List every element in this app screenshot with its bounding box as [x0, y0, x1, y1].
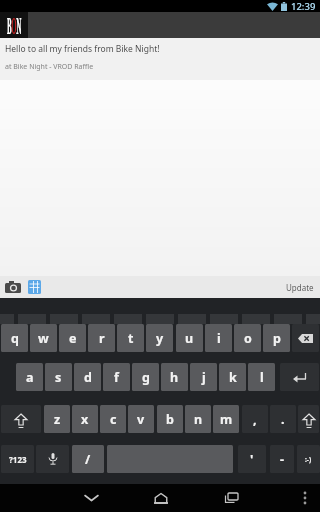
button[interactable]: u: [176, 324, 203, 352]
button[interactable]: .: [270, 405, 296, 433]
button[interactable]: [28, 280, 41, 294]
button[interactable]: m: [213, 405, 239, 433]
staticText: r: [99, 330, 105, 347]
button[interactable]: g: [132, 363, 159, 391]
button[interactable]: BON: [0, 12, 28, 38]
button[interactable]: j: [190, 363, 217, 391]
button[interactable]: [298, 405, 319, 433]
button[interactable]: ?123: [1, 445, 34, 473]
button[interactable]: [78, 484, 104, 512]
staticText: t: [128, 330, 134, 347]
button[interactable]: q: [1, 324, 28, 352]
staticText: o: [244, 330, 252, 347]
staticText: /: [85, 451, 91, 468]
button[interactable]: k: [219, 363, 246, 391]
button[interactable]: b: [157, 405, 183, 433]
staticText: z: [54, 411, 61, 428]
button[interactable]: /: [72, 445, 104, 473]
button[interactable]: i: [205, 324, 232, 352]
staticText: d: [84, 369, 92, 386]
button[interactable]: c: [100, 405, 126, 433]
button[interactable]: z: [44, 405, 70, 433]
button[interactable]: ': [238, 445, 266, 473]
button[interactable]: f: [103, 363, 130, 391]
button[interactable]: ,: [242, 405, 268, 433]
button[interactable]: [36, 445, 69, 473]
staticText: b: [166, 411, 174, 428]
staticText: m: [220, 411, 233, 428]
button[interactable]: -: [270, 445, 294, 473]
button[interactable]: [218, 484, 244, 512]
button[interactable]: n: [185, 405, 211, 433]
staticText: c: [110, 411, 117, 428]
staticText: q: [11, 330, 19, 347]
staticText: ,: [253, 411, 257, 428]
staticText: g: [142, 369, 150, 386]
staticText: f: [114, 369, 119, 386]
staticText: v: [137, 411, 145, 428]
staticText: y: [156, 330, 164, 347]
button[interactable]: [148, 484, 174, 512]
button[interactable]: y: [146, 324, 173, 352]
button[interactable]: v: [128, 405, 154, 433]
staticText: p: [273, 330, 281, 347]
button[interactable]: a: [16, 363, 43, 391]
staticText: a: [26, 369, 34, 386]
staticText: at Bike Night - VROD Raffle: [5, 62, 94, 72]
button[interactable]: w: [30, 324, 57, 352]
staticText: l: [260, 369, 264, 386]
staticText: i: [217, 330, 221, 347]
button[interactable]: :-): [297, 445, 320, 473]
button[interactable]: t: [117, 324, 144, 352]
button[interactable]: s: [45, 363, 72, 391]
staticText: h: [170, 369, 179, 386]
staticText: ': [250, 451, 254, 468]
button[interactable]: [295, 484, 315, 512]
button[interactable]: d: [74, 363, 101, 391]
button[interactable]: Update: [286, 276, 320, 298]
staticText: :-): [305, 455, 312, 464]
button[interactable]: l: [248, 363, 275, 391]
button[interactable]: [1, 405, 41, 433]
button[interactable]: h: [161, 363, 188, 391]
button[interactable]: [5, 281, 21, 293]
button[interactable]: x: [72, 405, 98, 433]
staticText: -: [280, 451, 285, 468]
staticText: BON: [7, 12, 22, 38]
staticText: s: [55, 369, 62, 386]
staticText: 12:39: [291, 0, 316, 12]
button[interactable]: [280, 363, 319, 391]
staticText: e: [69, 330, 77, 347]
staticText: Hello to all my friends from Bike Night!: [5, 43, 160, 55]
staticText: x: [81, 411, 89, 428]
staticText: ?123: [9, 454, 27, 465]
staticText: n: [194, 411, 203, 428]
staticText: u: [185, 330, 194, 347]
staticText: .: [281, 411, 285, 428]
button[interactable]: o: [234, 324, 261, 352]
button[interactable]: p: [263, 324, 290, 352]
button[interactable]: [292, 324, 319, 352]
staticText: w: [38, 330, 49, 347]
staticText: k: [229, 369, 237, 386]
button[interactable]: e: [59, 324, 86, 352]
staticText: Update: [286, 282, 314, 293]
button[interactable]: r: [88, 324, 115, 352]
staticText: j: [202, 369, 206, 386]
